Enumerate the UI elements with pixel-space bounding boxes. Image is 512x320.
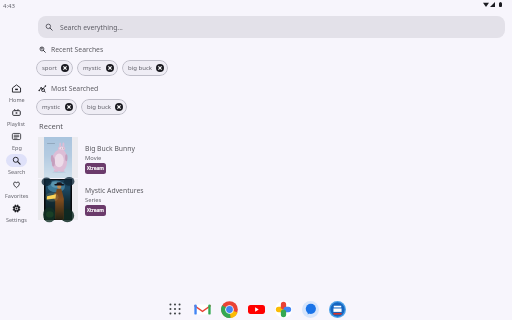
button[interactable]: Chrome [220, 300, 238, 318]
staticText: Big Buck Bunny [85, 144, 135, 153]
staticText: 4:43 [3, 2, 15, 10]
staticText: Favorites [5, 192, 29, 199]
staticText: Recent [39, 121, 64, 131]
staticText: Settings [6, 216, 27, 223]
button[interactable]: big buck [122, 60, 168, 76]
button[interactable]: All apps [166, 300, 184, 318]
staticText: Recent Searches [51, 45, 104, 54]
button[interactable]: mystic [77, 60, 118, 76]
staticText: big buck [128, 64, 152, 72]
button[interactable]: YouTube [247, 300, 265, 318]
staticText: Xtream [87, 207, 104, 214]
staticText: big buck [87, 103, 111, 111]
button[interactable]: Search everything... [38, 16, 505, 38]
button[interactable]: Search [0, 154, 33, 175]
button[interactable]: Playlist [0, 106, 33, 127]
button[interactable]: sport [36, 60, 73, 76]
staticText: Series [85, 196, 102, 204]
staticText: sport [42, 64, 57, 72]
staticText: Most Searched [51, 84, 99, 93]
button[interactable]: Photos [274, 300, 292, 318]
staticText: Playlist [7, 120, 26, 127]
staticText: mystic [42, 103, 61, 111]
button[interactable]: Gmail [193, 300, 211, 318]
button[interactable]: Settings [0, 202, 33, 223]
staticText: Search [8, 168, 26, 175]
staticText: mystic [83, 64, 102, 72]
button[interactable]: Mystic Adventures [38, 179, 238, 220]
button[interactable]: mystic [36, 99, 77, 115]
button[interactable]: Play Store [328, 300, 346, 318]
staticText: Epg [12, 144, 22, 151]
button[interactable]: Messages [301, 300, 319, 318]
button[interactable]: Epg [0, 130, 33, 151]
staticText: Search everything... [60, 23, 123, 32]
staticText: Xtream [87, 165, 104, 172]
button[interactable]: Home [0, 82, 33, 103]
button[interactable]: Favorites [0, 178, 33, 199]
staticText: Movie [85, 154, 102, 162]
button[interactable]: Big Buck Bunny [38, 137, 238, 178]
staticText: Home [9, 96, 25, 103]
staticText: Mystic Adventures [85, 186, 144, 195]
button[interactable]: big buck [81, 99, 127, 115]
